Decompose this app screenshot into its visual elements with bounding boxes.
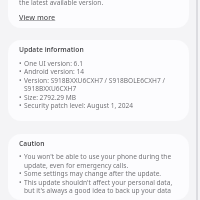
staticText: Caution [19,139,45,148]
staticText: but it's always a good idea to back up y… [24,186,172,195]
staticText: This update shouldn't affect your person… [24,178,173,187]
staticText: Size: 2792.29 MB [24,93,76,102]
staticText: • [19,59,22,68]
staticText: Version: S918BXXU6CXH7 / S918BOLE6CXH7 / [24,76,165,85]
button[interactable]: View more [19,12,56,22]
staticText: • [19,93,22,102]
staticText: update, even for emergency calls. [24,161,129,170]
staticText: You won't be able to use your phone duri… [24,152,172,161]
staticText: S918BXXU6CXH7 [24,84,77,93]
staticText: Some settings may change after the updat… [24,169,162,178]
staticText: the latest available version. [19,0,104,7]
staticText: • [19,169,22,178]
staticText: One UI version: 6.1 [24,59,83,68]
staticText: • [19,101,22,110]
staticText: Security patch level: August 1, 2024 [24,101,134,110]
staticText: Android version: 14 [24,67,85,76]
staticText: • [19,152,22,161]
staticText: • [19,67,22,76]
staticText: • [19,76,22,85]
staticText: View more [19,12,56,22]
staticText: Update information [19,45,84,54]
staticText: • [19,178,22,187]
